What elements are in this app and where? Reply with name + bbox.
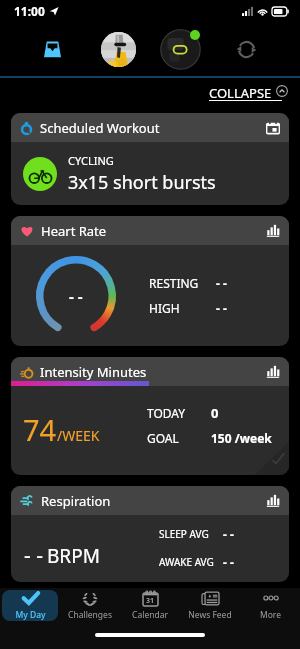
staticText: 74 bbox=[23, 410, 57, 449]
staticText: Intensity Minutes bbox=[40, 363, 147, 381]
button[interactable]: 31 bbox=[122, 590, 178, 621]
staticText: 0 bbox=[211, 404, 219, 422]
staticText: HIGH bbox=[149, 300, 216, 316]
button[interactable]: Profile bbox=[90, 22, 146, 76]
button[interactable]: Respiration bbox=[11, 486, 289, 582]
staticText: More bbox=[260, 609, 281, 621]
staticText: 3x15 short bursts bbox=[68, 170, 216, 195]
button[interactable]: Challenges bbox=[62, 590, 118, 621]
staticText: - - bbox=[216, 300, 227, 316]
button[interactable]: Scheduled Workout bbox=[11, 113, 289, 205]
staticText: GOAL bbox=[147, 430, 211, 446]
staticText: Scheduled Workout bbox=[40, 119, 160, 137]
staticText: 150 /week bbox=[211, 430, 272, 446]
staticText: /WEEK bbox=[57, 426, 100, 445]
staticText: Heart Rate bbox=[41, 222, 107, 240]
staticText: - - bbox=[69, 286, 83, 306]
staticText: TODAY bbox=[147, 405, 211, 421]
button[interactable]: Device bbox=[146, 22, 214, 76]
staticText: - - bbox=[223, 526, 234, 542]
staticText: 11:00 bbox=[14, 3, 45, 19]
button[interactable]: Inbox bbox=[0, 22, 90, 76]
button[interactable]: Heart Rate bbox=[11, 216, 289, 346]
staticText: - - bbox=[223, 554, 234, 570]
staticText: Calendar bbox=[132, 609, 168, 621]
staticText: Challenges bbox=[68, 609, 112, 621]
button[interactable]: Intensity Minutes bbox=[11, 357, 289, 475]
staticText: - - bbox=[216, 275, 227, 291]
staticText: Respiration bbox=[41, 492, 111, 510]
button[interactable]: News Feed bbox=[182, 590, 238, 621]
staticText: 31 bbox=[146, 596, 155, 606]
staticText: SLEEP AVG bbox=[159, 527, 223, 541]
button[interactable]: My Day bbox=[2, 590, 58, 621]
staticText: AWAKE AVG bbox=[159, 555, 223, 569]
button[interactable]: COLLAPSE bbox=[209, 84, 288, 102]
staticText: News Feed bbox=[188, 609, 232, 621]
staticText: - - bbox=[24, 541, 43, 570]
button[interactable]: Sync bbox=[214, 22, 300, 76]
staticText: BRPM bbox=[47, 543, 100, 569]
button[interactable]: More bbox=[242, 590, 298, 621]
staticText: My Day bbox=[15, 609, 46, 621]
staticText: CYCLING bbox=[68, 153, 114, 168]
staticText: RESTING bbox=[149, 275, 216, 291]
staticText: COLLAPSE bbox=[209, 84, 272, 102]
